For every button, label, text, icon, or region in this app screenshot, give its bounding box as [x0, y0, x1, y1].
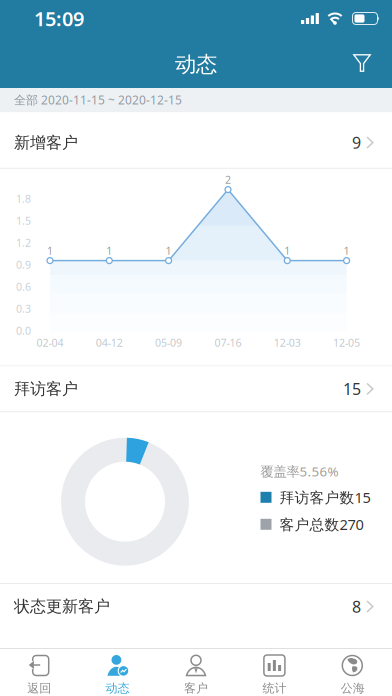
staticText: 02-04 — [36, 335, 63, 350]
staticText: 1.8 — [16, 191, 31, 206]
staticText: 动态 — [175, 51, 217, 78]
staticText: 状态更新客户 — [14, 597, 110, 616]
staticText: 1 — [106, 243, 112, 258]
staticText: 8 — [352, 596, 361, 617]
button[interactable]: 动态 — [78, 649, 157, 696]
staticText: 12-03 — [274, 335, 301, 350]
staticText: 返回 — [27, 681, 51, 696]
staticText: 9 — [352, 132, 361, 153]
staticText: 15:09 — [34, 5, 84, 32]
staticText: 覆盖率5.56% — [260, 462, 338, 480]
staticText: 0.6 — [16, 279, 31, 294]
staticText: 客户 — [184, 681, 208, 696]
staticText: 新增客户 — [14, 133, 78, 152]
button[interactable]: 统计 — [235, 649, 314, 696]
button[interactable] — [353, 54, 392, 78]
staticText: 1 — [47, 243, 53, 258]
staticText: 全部 2020-11-15 ~ 2020-12-15 — [14, 92, 182, 108]
button[interactable]: 状态更新客户 — [0, 584, 392, 629]
staticText: 12-05 — [333, 335, 360, 350]
staticText: 拜访客户 — [14, 379, 78, 399]
staticText: 0.3 — [16, 301, 31, 316]
staticText: 1 — [284, 243, 290, 258]
staticText: 07-16 — [214, 335, 241, 350]
button[interactable]: 公海 — [314, 649, 392, 696]
staticText: 统计 — [262, 681, 286, 696]
button[interactable]: 新增客户 — [0, 112, 392, 168]
staticText: 2 — [225, 172, 231, 187]
staticText: 0.9 — [16, 257, 31, 272]
staticText: 动态 — [106, 681, 130, 696]
staticText: 公海 — [341, 681, 365, 696]
staticText: 0.0 — [16, 323, 31, 338]
button[interactable]: 客户 — [157, 649, 235, 696]
staticText: 15 — [343, 378, 361, 399]
staticText: 1.5 — [16, 213, 31, 228]
staticText: 04-12 — [96, 335, 123, 350]
staticText: 05-09 — [155, 335, 182, 350]
staticText: 1 — [344, 243, 350, 258]
staticText: 1.2 — [16, 235, 31, 250]
button[interactable]: 返回 — [0, 649, 78, 696]
staticText: 拜访客户数15 — [279, 488, 370, 507]
staticText: 1 — [166, 243, 172, 258]
staticText: 客户总数270 — [279, 515, 363, 534]
button[interactable]: 拜访客户 — [0, 366, 392, 411]
